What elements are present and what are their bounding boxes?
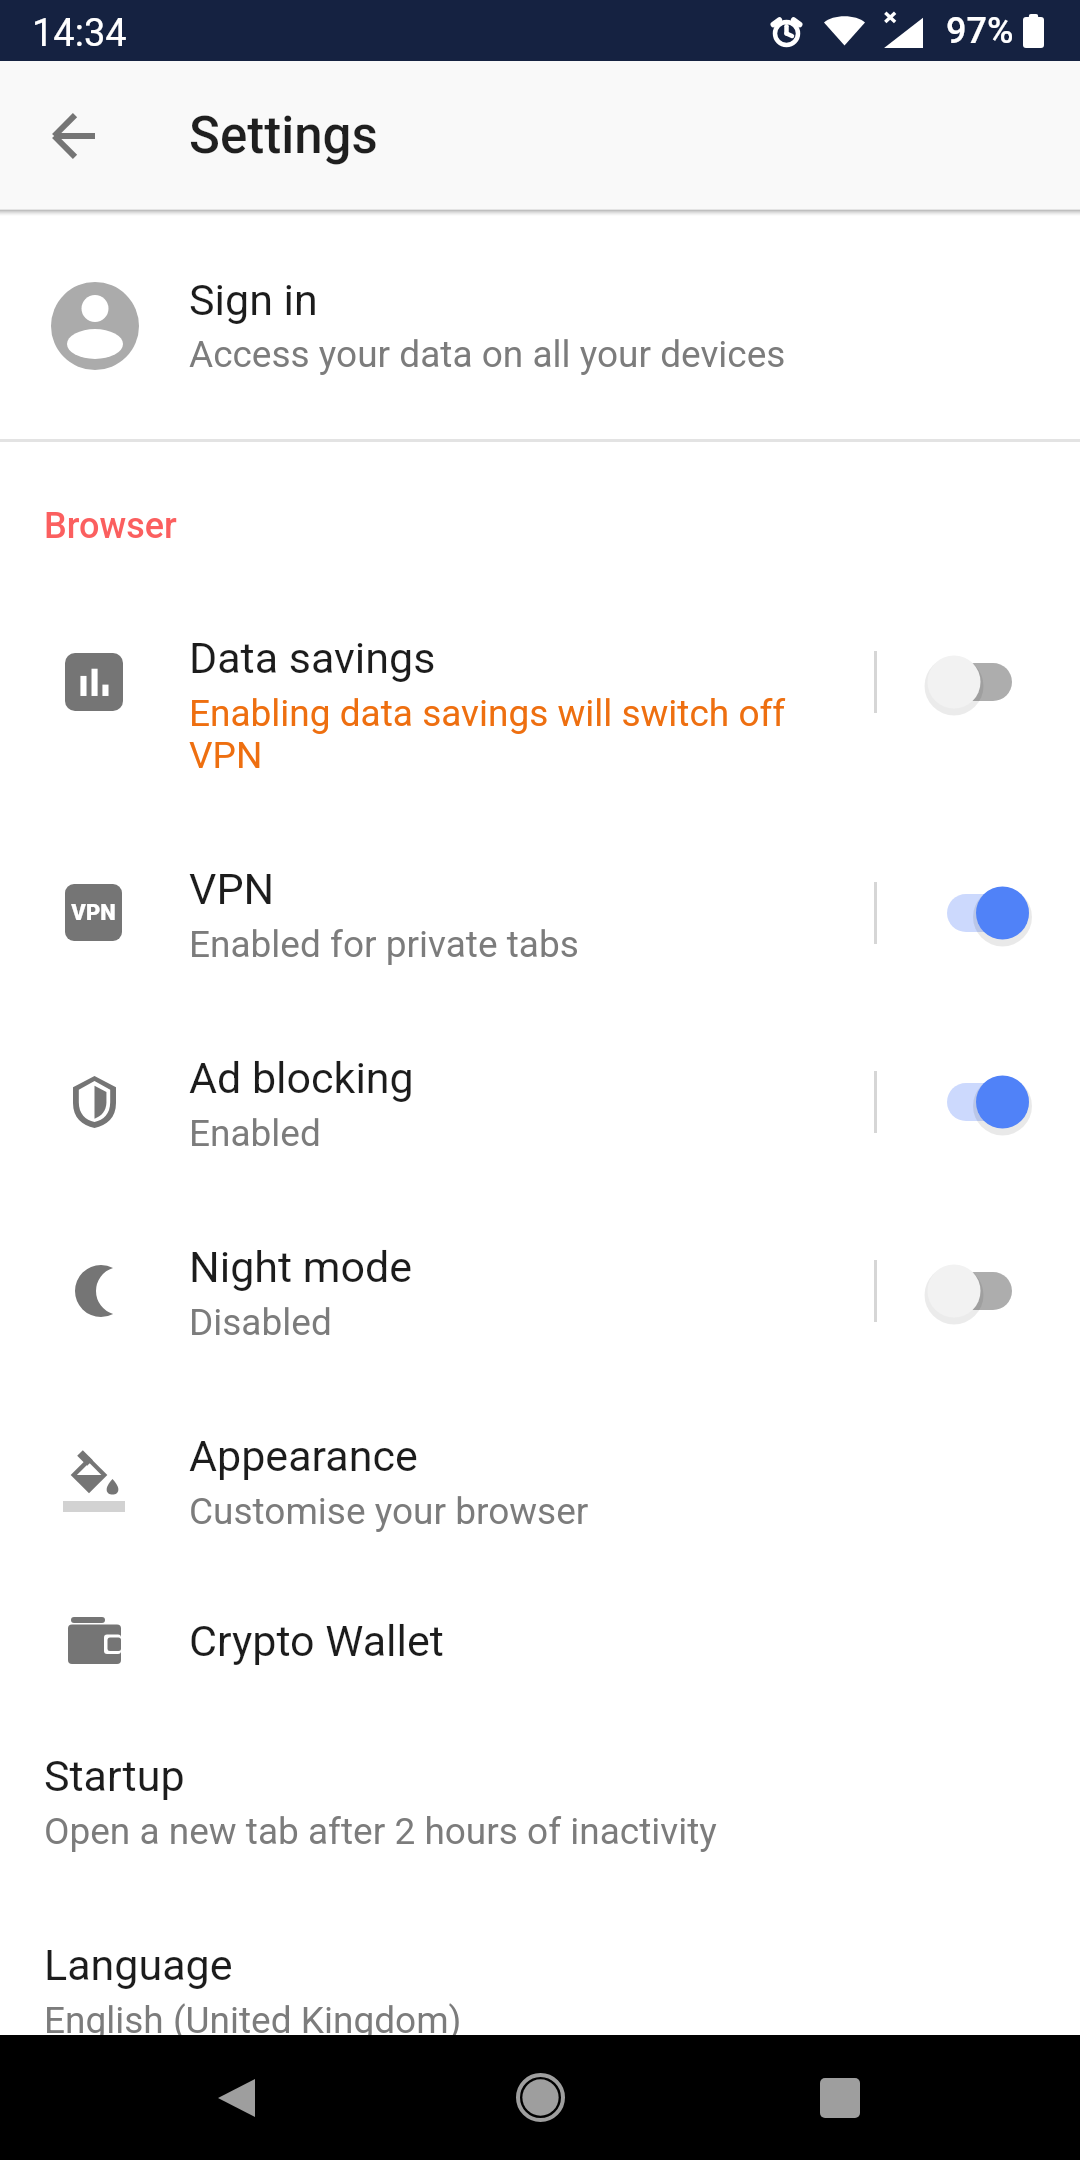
staticText: Appearance (189, 1431, 418, 1481)
button[interactable]: Appearance (0, 1396, 1080, 1586)
staticText: VPN (189, 864, 275, 914)
staticText: Settings (189, 106, 378, 166)
staticText: Access your data on all your devices (189, 333, 786, 376)
staticText: Disabled (189, 1301, 332, 1344)
button[interactable]: Startup (0, 1716, 1080, 1861)
button[interactable]: Back (22, 84, 126, 188)
staticText: Enabled (189, 1112, 321, 1155)
staticText: Enabling data savings will switch off VP… (189, 692, 859, 777)
button[interactable]: Night mode (0, 1207, 1080, 1397)
staticText: Data savings (189, 633, 436, 683)
staticText: Startup (44, 1751, 185, 1801)
button[interactable]: VPN (0, 829, 1080, 1019)
staticText: Customise your browser (189, 1490, 589, 1533)
button[interactable]: Sign in (0, 208, 1080, 437)
staticText: Crypto Wallet (189, 1616, 444, 1666)
staticText: Sign in (189, 275, 318, 325)
button[interactable]: Ad blocking (0, 1018, 1080, 1208)
staticText: 14:34 (32, 11, 127, 56)
button[interactable]: Toggle VPN (914, 876, 1044, 950)
button[interactable]: Toggle Data savings (914, 645, 1044, 719)
button[interactable]: Home (475, 2035, 605, 2160)
button[interactable]: Back (172, 2035, 302, 2160)
staticText: Browser (44, 505, 177, 547)
button[interactable]: Recents (775, 2035, 905, 2160)
staticText: VPN (71, 900, 116, 926)
staticText: Ad blocking (189, 1053, 414, 1103)
staticText: Enabled for private tabs (189, 923, 579, 966)
button[interactable]: Data savings (0, 598, 1080, 788)
staticText: Language (44, 1940, 233, 1990)
button[interactable]: Toggle Night mode (914, 1254, 1044, 1328)
button[interactable]: Toggle Ad blocking (914, 1065, 1044, 1139)
staticText: Open a new tab after 2 hours of inactivi… (44, 1810, 717, 1853)
button[interactable]: Language (0, 1905, 1080, 2050)
staticText: 97% (946, 10, 1014, 52)
staticText: English (United Kingdom) (44, 1999, 462, 2042)
staticText: Night mode (189, 1242, 412, 1292)
button[interactable]: Crypto Wallet (0, 1581, 1080, 1681)
